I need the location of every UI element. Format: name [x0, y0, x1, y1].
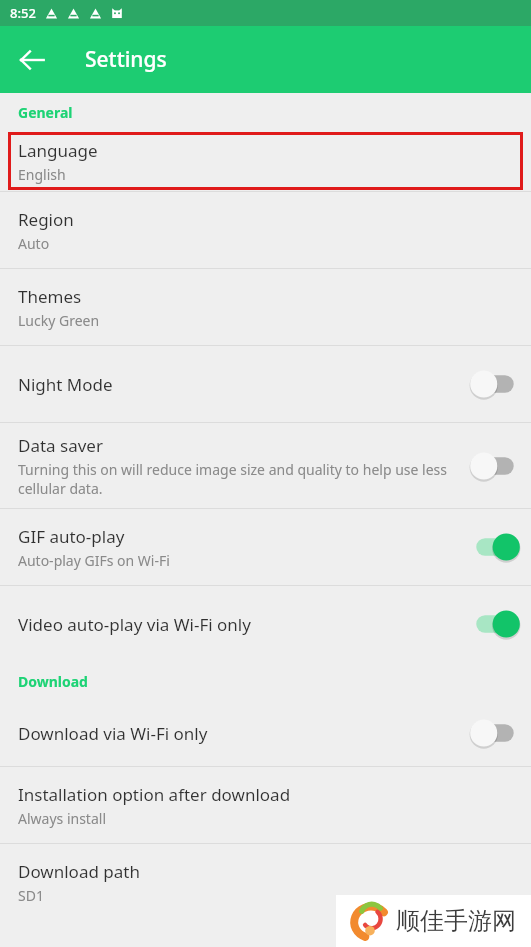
button[interactable]: Region	[0, 192, 531, 268]
staticText: Download via Wi-Fi only	[18, 722, 208, 745]
button[interactable]: Data saver	[0, 423, 531, 508]
button[interactable]: Language	[8, 132, 523, 190]
staticText: Auto-play GIFs on Wi-Fi	[18, 551, 170, 570]
staticText: Turning this on will reduce image size a…	[18, 460, 463, 498]
button[interactable]: Night Mode	[0, 346, 531, 422]
button[interactable]: GIF auto-play	[0, 509, 531, 585]
staticText: 8:52	[10, 4, 36, 22]
staticText: Download path	[18, 860, 140, 883]
button[interactable]: Installation option after download	[0, 767, 531, 843]
staticText: Data saver	[18, 434, 103, 457]
staticText: Themes	[18, 285, 82, 308]
staticText: Language	[18, 139, 98, 162]
staticText: General	[18, 103, 73, 122]
button[interactable]: Video auto-play via Wi-Fi only	[0, 586, 531, 662]
button[interactable]: Download path	[0, 844, 531, 920]
staticText: Lucky Green	[18, 311, 100, 330]
button[interactable]: Back	[0, 28, 64, 92]
staticText: Always install	[18, 809, 107, 828]
staticText: Video auto-play via Wi-Fi only	[18, 613, 251, 636]
staticText: Installation option after download	[18, 783, 291, 806]
button[interactable]: Download via Wi-Fi only	[0, 700, 531, 766]
button[interactable]: Themes	[0, 269, 531, 345]
staticText: SD1	[18, 886, 44, 905]
staticText: Download	[18, 672, 88, 691]
staticText: English	[18, 165, 66, 184]
staticText: Night Mode	[18, 373, 113, 396]
staticText: Auto	[18, 234, 50, 253]
staticText: Settings	[85, 45, 167, 74]
staticText: Region	[18, 208, 74, 231]
staticText: GIF auto-play	[18, 525, 125, 548]
staticText: 顺佳手游网	[396, 906, 516, 936]
